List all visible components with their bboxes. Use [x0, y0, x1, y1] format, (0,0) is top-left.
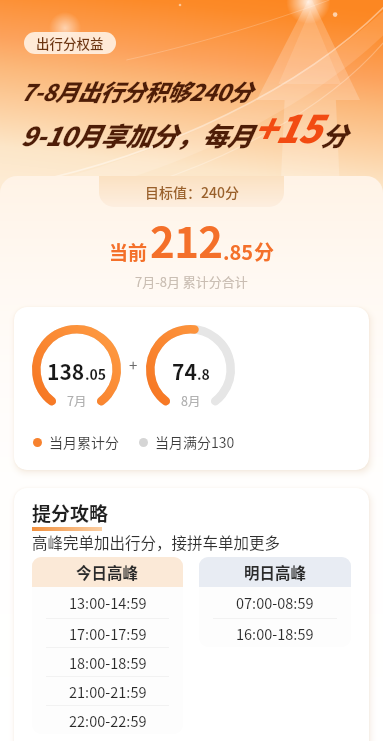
staticText: 提分攻略	[32, 499, 109, 527]
staticText: 9-10月享加分，每月	[20, 116, 252, 154]
staticText: 目标值：240分	[145, 182, 239, 202]
staticText: 17:00-17:59	[69, 623, 147, 644]
staticText: 8月	[181, 391, 201, 409]
staticText: 7月	[67, 391, 87, 409]
staticText: 分	[254, 237, 274, 266]
staticText: 当月累计分	[49, 432, 119, 452]
staticText: 16:00-18:59	[236, 623, 314, 644]
staticText: 7月-8月 累计分合计	[135, 272, 248, 291]
staticText: 分	[320, 116, 346, 154]
staticText: 今日高峰	[76, 561, 139, 583]
staticText: +	[129, 354, 138, 376]
staticText: 7-8月出行分积够240分	[20, 74, 251, 107]
staticText: 07:00-08:59	[236, 592, 314, 613]
staticText: .85	[223, 237, 254, 266]
staticText: 明日高峰	[244, 561, 307, 583]
staticText: .05	[85, 364, 107, 384]
staticText: 21:00-21:59	[69, 681, 147, 702]
staticText: +15	[252, 99, 320, 154]
staticText: .8	[197, 364, 210, 384]
button[interactable]: 138	[14, 307, 369, 470]
staticText: 212	[150, 209, 223, 270]
staticText: 22:00-22:59	[69, 710, 147, 731]
staticText: 74	[172, 356, 197, 386]
staticText: 13:00-14:59	[69, 592, 147, 613]
staticText: 出行分权益	[36, 33, 104, 53]
staticText: 高峰完单加出行分，接拼车单加更多	[32, 531, 281, 553]
staticText: 18:00-18:59	[69, 652, 147, 673]
staticText: 138	[47, 356, 85, 386]
staticText: 当前	[109, 238, 148, 266]
staticText: 当月满分130	[155, 432, 235, 452]
button[interactable]: 出行分权益	[24, 32, 116, 54]
